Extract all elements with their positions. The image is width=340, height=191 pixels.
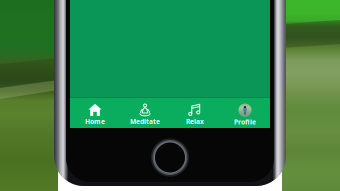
staticText: Relax <box>186 117 204 126</box>
button[interactable]: Home <box>70 98 120 128</box>
staticText: Profile <box>234 118 256 126</box>
button[interactable]: Relax <box>170 98 220 128</box>
staticText: Home <box>85 117 105 126</box>
button[interactable]: Profile <box>220 98 270 128</box>
button[interactable]: Meditate <box>120 98 170 128</box>
staticText: Meditate <box>130 117 160 126</box>
